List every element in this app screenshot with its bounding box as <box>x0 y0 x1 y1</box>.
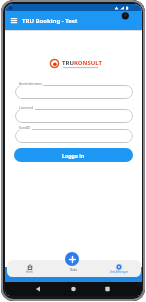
staticText: Inställningar <box>110 270 128 274</box>
staticText: Hem <box>26 270 33 274</box>
staticText: Lösenord <box>19 106 34 110</box>
button[interactable]: Boka <box>51 260 96 277</box>
staticText: KundID <box>19 126 31 130</box>
staticText: TRUKONSULT <box>62 59 102 67</box>
staticText: Användarname <box>19 82 42 86</box>
button[interactable]: Logga in <box>14 148 133 162</box>
button[interactable]: Hem <box>7 260 51 277</box>
button[interactable] <box>15 85 133 99</box>
staticText: Logga in <box>62 152 85 159</box>
button[interactable] <box>15 129 133 143</box>
button[interactable] <box>15 109 133 123</box>
button[interactable] <box>65 252 79 266</box>
button[interactable]: Inställningar <box>96 260 141 277</box>
staticText: Boka <box>70 268 78 272</box>
staticText: TRU Booking - Test <box>22 17 78 25</box>
